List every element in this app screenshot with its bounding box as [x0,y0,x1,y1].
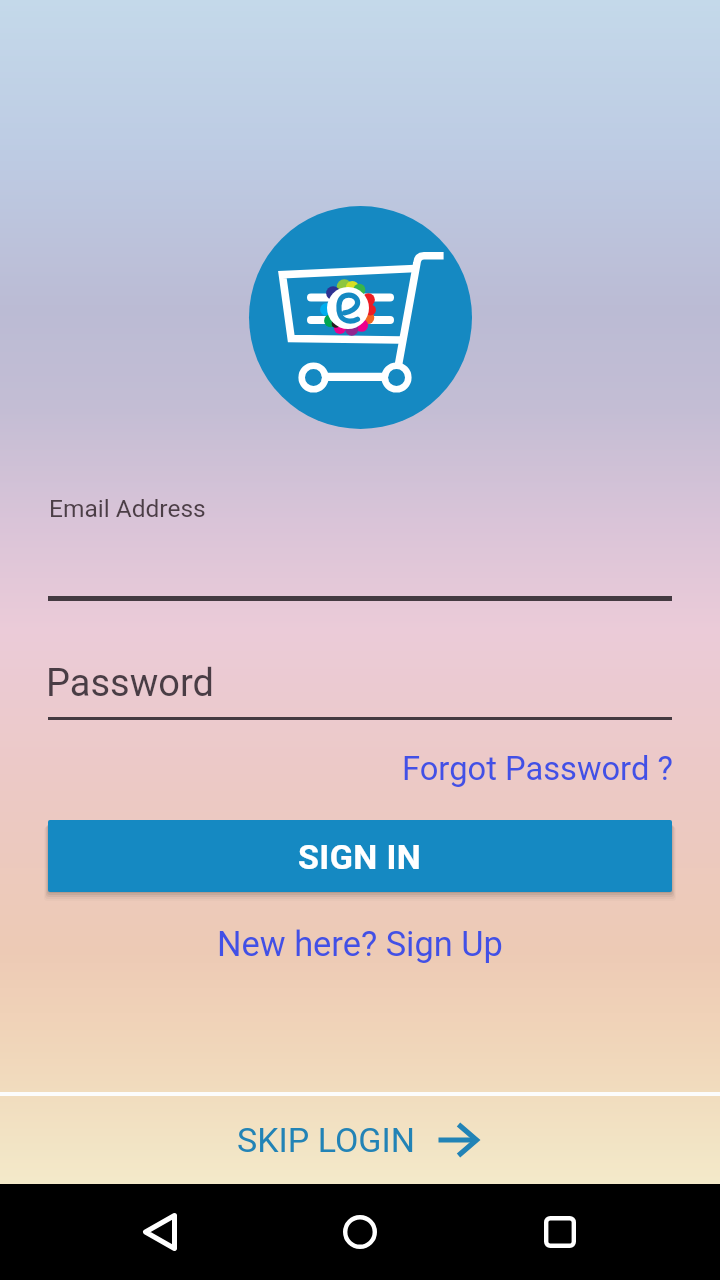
button[interactable]: Recent apps [520,1184,600,1280]
button[interactable]: Home [320,1184,400,1280]
staticText: SIGN IN [298,837,422,877]
staticText: Email Address [49,494,206,523]
staticText: New here? Sign Up [217,924,503,964]
button[interactable]: SIGN IN [48,820,672,892]
button[interactable]: SKIP LOGIN [0,1096,720,1184]
staticText: Password [46,661,214,706]
button[interactable]: Back [120,1184,200,1280]
staticText: SKIP LOGIN [237,1120,415,1160]
staticText: Forgot Password ? [402,750,673,788]
button[interactable]: Forgot Password ? [394,747,681,791]
button[interactable]: New here? Sign Up [209,920,511,968]
